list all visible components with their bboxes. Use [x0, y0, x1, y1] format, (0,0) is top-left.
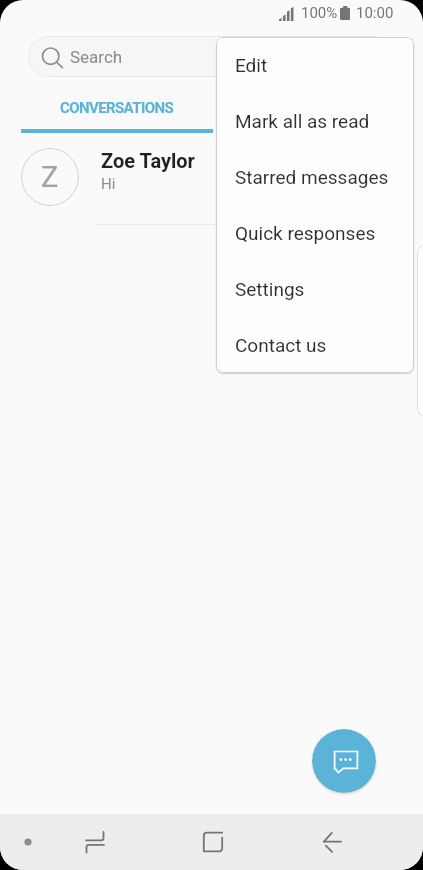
button[interactable]: Quick responses: [216, 205, 414, 261]
button[interactable]: Show menu: [6, 827, 50, 857]
staticText: Edit: [235, 54, 268, 76]
staticText: Zoe Taylor: [101, 149, 195, 172]
staticText: Contact us: [235, 334, 327, 356]
button[interactable]: Edit: [216, 37, 414, 93]
staticText: 100%: [301, 4, 338, 22]
button[interactable]: Mark all as read: [216, 93, 414, 149]
staticText: Starred messages: [235, 166, 389, 188]
staticText: Z: [41, 160, 59, 194]
button[interactable]: Back: [310, 827, 354, 857]
button[interactable]: Contact us: [216, 317, 414, 373]
staticText: 10:00: [356, 4, 394, 22]
staticText: Hi: [101, 175, 116, 193]
button[interactable]: Starred messages: [216, 149, 414, 205]
button[interactable]: CONVERSATIONS: [21, 99, 213, 133]
staticText: Settings: [235, 278, 305, 300]
staticText: Search: [70, 47, 123, 67]
button[interactable]: Z: [0, 140, 423, 214]
button[interactable]: Search: [28, 36, 395, 77]
button[interactable]: Settings: [216, 261, 414, 317]
staticText: Mark all as read: [235, 110, 370, 132]
staticText: Quick responses: [235, 222, 376, 244]
button[interactable]: Recent apps: [73, 827, 117, 857]
staticText: CONVERSATIONS: [60, 99, 174, 117]
button[interactable]: New conversation: [312, 729, 376, 793]
button[interactable]: Home: [191, 827, 235, 857]
